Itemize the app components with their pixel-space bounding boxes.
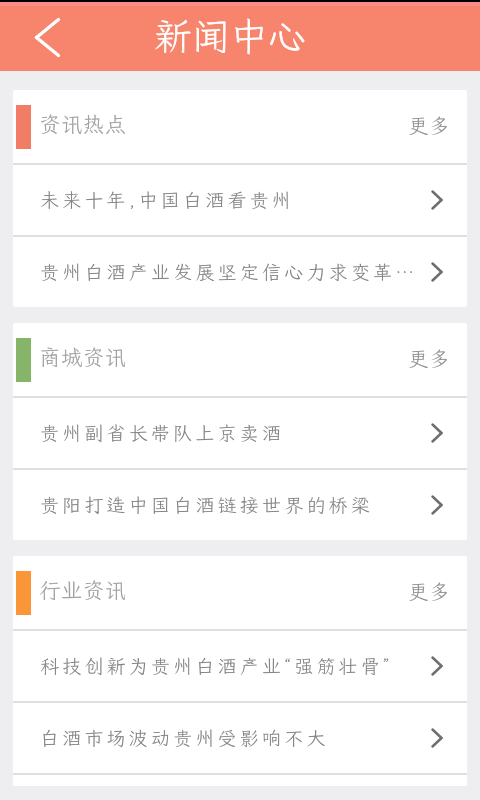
staticText: 商城资讯 bbox=[39, 343, 127, 371]
staticText: 新闻中心 bbox=[154, 11, 307, 61]
button[interactable]: 白酒市场波动贵州受影响不大 bbox=[13, 703, 467, 773]
staticText: 贵阳打造中国白酒链接世界的桥梁 bbox=[40, 492, 421, 517]
button[interactable]: 贵阳打造中国白酒链接世界的桥梁 bbox=[13, 470, 467, 540]
staticText: 更多 bbox=[408, 345, 451, 372]
button[interactable]: 商城资讯 bbox=[13, 323, 467, 396]
staticText: 更多 bbox=[408, 578, 451, 605]
staticText: 贵州白酒产业发展坚定信心力求变革… bbox=[40, 259, 421, 284]
button[interactable]: 科技创新为贵州白酒产业“强筋壮骨” bbox=[13, 631, 467, 701]
staticText: 更多 bbox=[408, 112, 451, 139]
button[interactable]: 资讯热点 bbox=[13, 90, 467, 163]
button[interactable]: 未来十年,中国白酒看贵州 bbox=[13, 165, 467, 235]
staticText: 未来十年,中国白酒看贵州 bbox=[40, 187, 421, 212]
button[interactable]: 贵州副省长带队上京卖酒 bbox=[13, 398, 467, 468]
staticText: 科技创新为贵州白酒产业“强筋壮骨” bbox=[40, 653, 421, 678]
staticText: 贵州副省长带队上京卖酒 bbox=[40, 420, 421, 445]
staticText: 资讯热点 bbox=[39, 110, 127, 138]
button[interactable]: Back bbox=[23, 12, 72, 61]
staticText: 行业资讯 bbox=[39, 576, 127, 604]
button[interactable]: 行业资讯 bbox=[13, 556, 467, 629]
staticText: 白酒市场波动贵州受影响不大 bbox=[40, 725, 421, 750]
button[interactable]: 贵州白酒产业发展坚定信心力求变革… bbox=[13, 237, 467, 307]
